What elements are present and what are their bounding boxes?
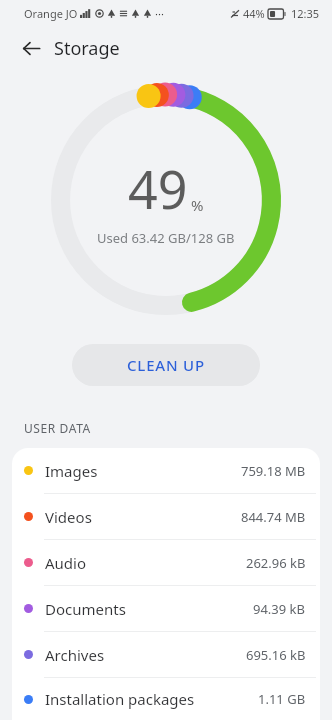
button[interactable]: Documents [12, 586, 320, 631]
staticText: Documents [45, 599, 126, 619]
staticText: Orange JO [24, 6, 78, 21]
button[interactable]: Videos [12, 494, 320, 539]
staticText: CLEAN UP [127, 355, 205, 375]
staticText: 12:35 [291, 6, 320, 21]
staticText: Installation packages [45, 689, 195, 709]
button[interactable]: Archives [12, 632, 320, 677]
staticText: 695.16 kB [246, 646, 306, 664]
button[interactable]: Audio [12, 540, 320, 585]
staticText: 49 [128, 153, 188, 224]
staticText: USER DATA [24, 420, 91, 436]
staticText: 94.39 kB [253, 600, 306, 618]
button[interactable]: Installation packages [12, 678, 320, 720]
button[interactable]: CLEAN UP [72, 344, 260, 386]
staticText: Images [45, 461, 98, 481]
staticText: Audio [45, 553, 87, 573]
staticText: Archives [45, 645, 105, 665]
button[interactable]: Images [12, 448, 320, 493]
staticText: % [191, 195, 204, 215]
staticText: Videos [45, 507, 92, 527]
staticText: Used 63.42 GB/128 GB [97, 229, 235, 247]
staticText: 1.11 GB [258, 690, 306, 708]
staticText: 44% [243, 6, 265, 21]
staticText: 759.18 MB [241, 462, 306, 480]
staticText: Storage [54, 36, 120, 61]
button[interactable]: Back [14, 31, 48, 65]
staticText: 262.96 kB [246, 554, 306, 572]
staticText: 844.74 MB [241, 508, 306, 526]
staticText: ··· [155, 6, 164, 21]
